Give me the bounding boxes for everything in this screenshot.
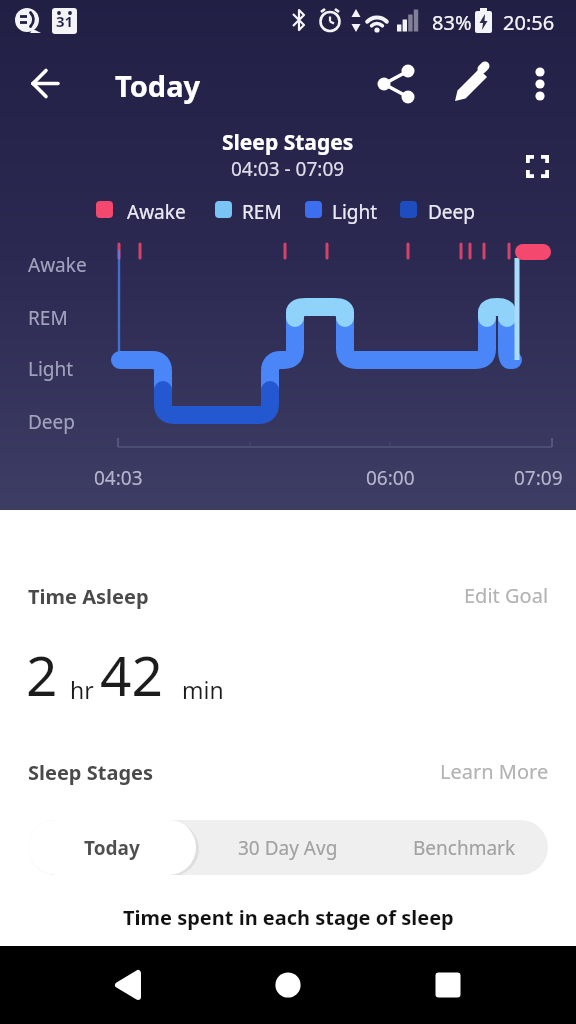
staticText: 20:56	[503, 9, 555, 36]
staticText: Today	[84, 835, 140, 861]
staticText: Deep	[28, 409, 75, 435]
staticText: Light	[332, 199, 378, 225]
staticText: 83%	[432, 9, 472, 36]
staticText: min	[182, 674, 224, 705]
button[interactable]	[80, 946, 176, 1024]
button[interactable]	[400, 946, 496, 1024]
staticText: REM	[242, 199, 282, 225]
staticText: Sleep Stages	[28, 759, 153, 786]
staticText: 30 Day Avg	[238, 835, 338, 861]
staticText: Light	[28, 356, 74, 382]
staticText: Today	[115, 66, 201, 105]
button[interactable]	[450, 62, 494, 106]
staticText: Learn More	[440, 758, 549, 785]
staticText: Sleep Stages	[222, 128, 354, 157]
button[interactable]	[240, 946, 336, 1024]
staticText: REM	[28, 305, 68, 331]
staticText: 06:00	[366, 465, 415, 491]
staticText: Time spent in each stage of sleep	[123, 904, 454, 931]
button[interactable]: 30 Day Avg	[196, 820, 380, 875]
button[interactable]: Today	[28, 820, 196, 875]
staticText: hr	[70, 674, 94, 705]
button[interactable]	[22, 61, 68, 107]
staticText: 04:03	[94, 465, 143, 491]
staticText: Deep	[428, 199, 475, 225]
staticText: 42	[100, 637, 163, 712]
staticText: 31	[56, 11, 74, 31]
staticText: 2	[26, 637, 58, 712]
staticText: 04:03 - 07:09	[231, 156, 345, 182]
button[interactable]: Benchmark	[380, 820, 548, 875]
staticText: Benchmark	[413, 835, 516, 861]
staticText: Awake	[127, 199, 186, 225]
staticText: Edit Goal	[464, 582, 549, 609]
staticText: Awake	[28, 252, 87, 278]
button[interactable]: Edit Goal	[440, 578, 556, 612]
button[interactable]	[374, 62, 418, 106]
staticText: 07:09	[514, 465, 563, 491]
button[interactable]	[516, 145, 560, 189]
button[interactable]: Learn More	[420, 754, 556, 788]
button[interactable]	[518, 62, 562, 106]
staticText: Time Asleep	[28, 583, 149, 610]
